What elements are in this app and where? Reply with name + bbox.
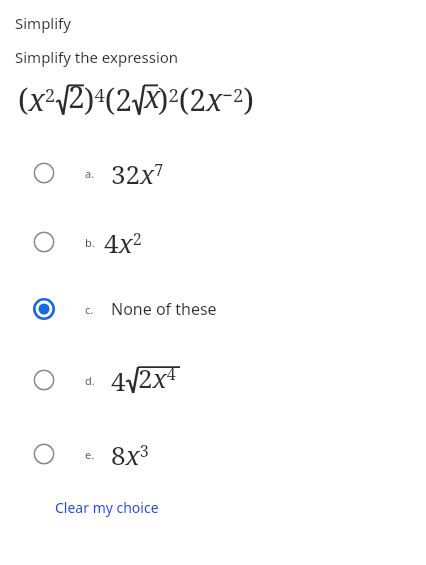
button[interactable]: a. bbox=[0, 138, 426, 208]
staticText: 2 bbox=[68, 76, 85, 117]
staticText: Simplify bbox=[15, 13, 71, 33]
staticText: 32x7 bbox=[111, 156, 164, 191]
staticText: Simplify the expression bbox=[15, 47, 179, 67]
staticText: Clear my choice bbox=[55, 498, 159, 517]
staticText: b. bbox=[85, 235, 95, 250]
staticText: c. bbox=[85, 302, 94, 317]
staticText: 4x2 bbox=[104, 225, 142, 260]
staticText: )2(2x−2) bbox=[158, 79, 254, 120]
staticText: None of these bbox=[111, 298, 217, 320]
staticText: a. bbox=[85, 166, 95, 181]
staticText: e. bbox=[85, 447, 95, 462]
staticText: d. bbox=[85, 373, 95, 388]
staticText: 2x4 bbox=[138, 360, 176, 395]
staticText: 8x3 bbox=[111, 437, 149, 472]
button[interactable]: c. bbox=[0, 276, 426, 342]
staticText: )4(2 bbox=[84, 79, 132, 120]
button[interactable]: b. bbox=[0, 208, 426, 276]
button[interactable]: e. bbox=[0, 418, 426, 490]
button[interactable]: Clear my choice bbox=[55, 498, 159, 517]
staticText: (x2 bbox=[18, 79, 56, 120]
staticText: 4 bbox=[111, 363, 126, 398]
button[interactable]: d. bbox=[0, 342, 426, 418]
staticText: x bbox=[144, 76, 161, 117]
